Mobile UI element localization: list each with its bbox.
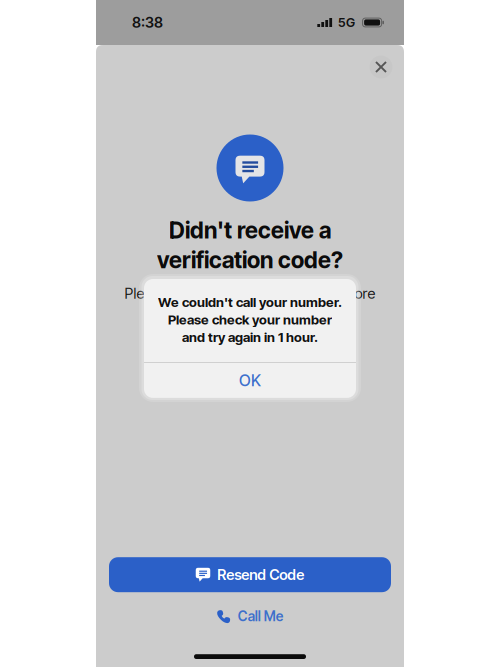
staticText: verification code? [157, 246, 343, 274]
staticText: We couldn't call your number. [158, 294, 342, 310]
staticText: and try again in 1 hour. [182, 329, 318, 345]
button[interactable]: Call Me [216, 605, 284, 627]
staticText: Please wait for the code to arrive befor… [124, 284, 375, 302]
button[interactable]: Close [369, 55, 392, 78]
staticText: 5G [338, 15, 355, 30]
staticText: OK [239, 371, 261, 390]
button[interactable]: OK [144, 363, 356, 398]
staticText: Please check your number [168, 311, 332, 328]
staticText: Didn't receive a [169, 216, 331, 244]
button[interactable]: Resend Code [109, 557, 391, 592]
staticText: Resend Code [217, 566, 304, 583]
staticText: 8:38 [132, 14, 163, 31]
staticText: Call Me [238, 608, 284, 624]
